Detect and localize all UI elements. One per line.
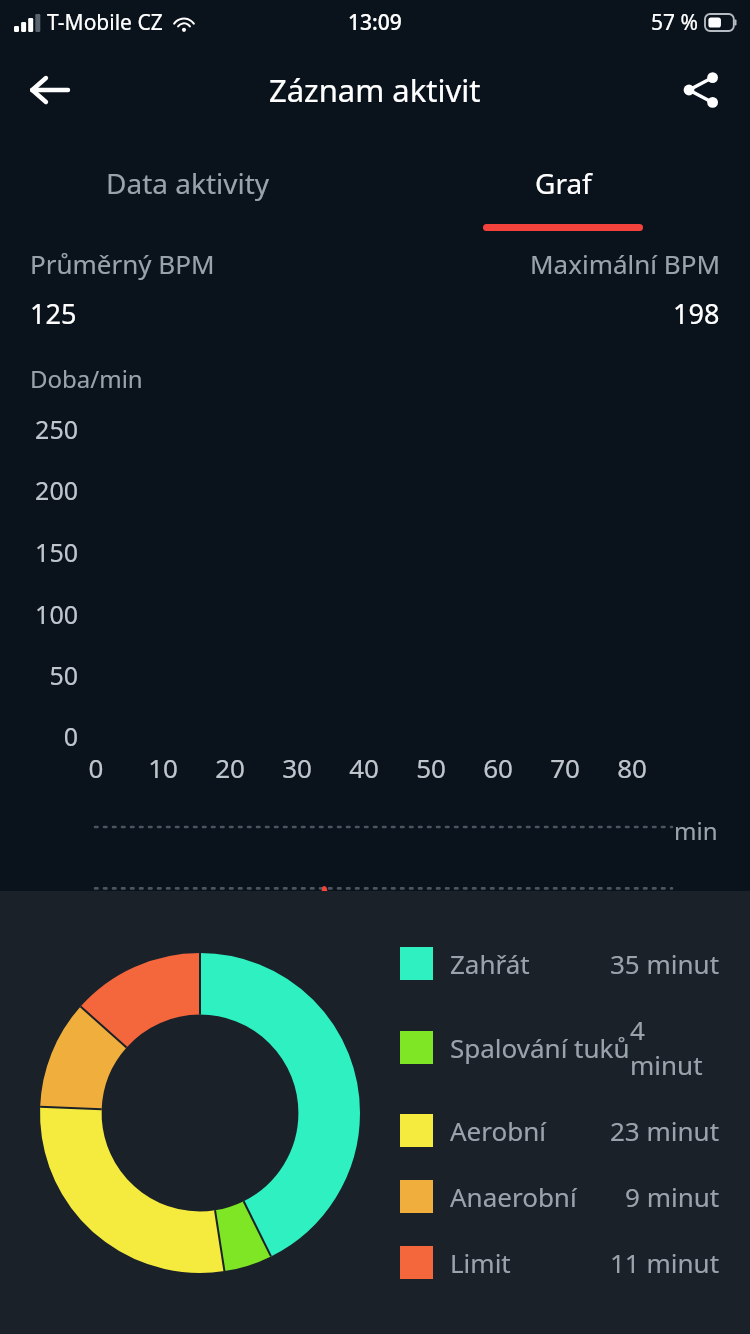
staticText: 13:09 (348, 8, 402, 37)
staticText: T-Mobile CZ (47, 8, 163, 37)
staticText: Aerobní (450, 1113, 546, 1148)
button[interactable]: Back (18, 59, 80, 121)
staticText: 250 (0, 412, 78, 446)
staticText: 70 (535, 750, 595, 785)
staticText: 100 (0, 597, 78, 631)
button[interactable]: Zahřát (400, 946, 720, 981)
staticText: Spalování tuků (450, 1030, 630, 1065)
staticText: 23 minut (610, 1113, 720, 1148)
staticText: 200 (0, 473, 78, 507)
staticText: Maximální BPM (530, 246, 720, 281)
button[interactable]: Spalování tuků (400, 1012, 720, 1082)
staticText: Data aktivity (106, 164, 270, 202)
staticText: 198 (673, 295, 720, 332)
staticText: 80 (602, 750, 662, 785)
staticText: 150 (0, 535, 78, 569)
staticText: 50 (401, 750, 461, 785)
button[interactable]: Anaerobní (400, 1179, 720, 1214)
staticText: 30 (267, 750, 327, 785)
staticText: Anaerobní (450, 1179, 577, 1214)
staticText: 10 (133, 750, 193, 785)
staticText: 0 (0, 719, 78, 753)
staticText: 9 minut (625, 1179, 720, 1214)
staticText: Záznam aktivit (269, 69, 481, 111)
staticText: 0 (66, 750, 126, 785)
staticText: Limit (450, 1245, 511, 1280)
staticText: Zahřát (450, 946, 530, 981)
staticText: Průměrný BPM (30, 246, 215, 281)
staticText: 4 minut (630, 1012, 720, 1082)
button[interactable]: Share (670, 59, 732, 121)
staticText: 40 (334, 750, 394, 785)
staticText: 60 (468, 750, 528, 785)
button[interactable]: Limit (400, 1245, 720, 1280)
staticText: 11 minut (610, 1245, 720, 1280)
staticText: 35 minut (610, 946, 720, 981)
staticText: 50 (0, 658, 78, 692)
staticText: 57 % (651, 8, 698, 37)
staticText: 20 (200, 750, 260, 785)
staticText: 125 (30, 295, 77, 332)
button[interactable]: Aerobní (400, 1113, 720, 1148)
button[interactable]: Data aktivity (0, 136, 375, 246)
staticText: min (674, 814, 718, 847)
staticText: Doba/min (30, 362, 143, 395)
button[interactable]: Graf (375, 136, 750, 246)
staticText: Graf (535, 164, 592, 202)
